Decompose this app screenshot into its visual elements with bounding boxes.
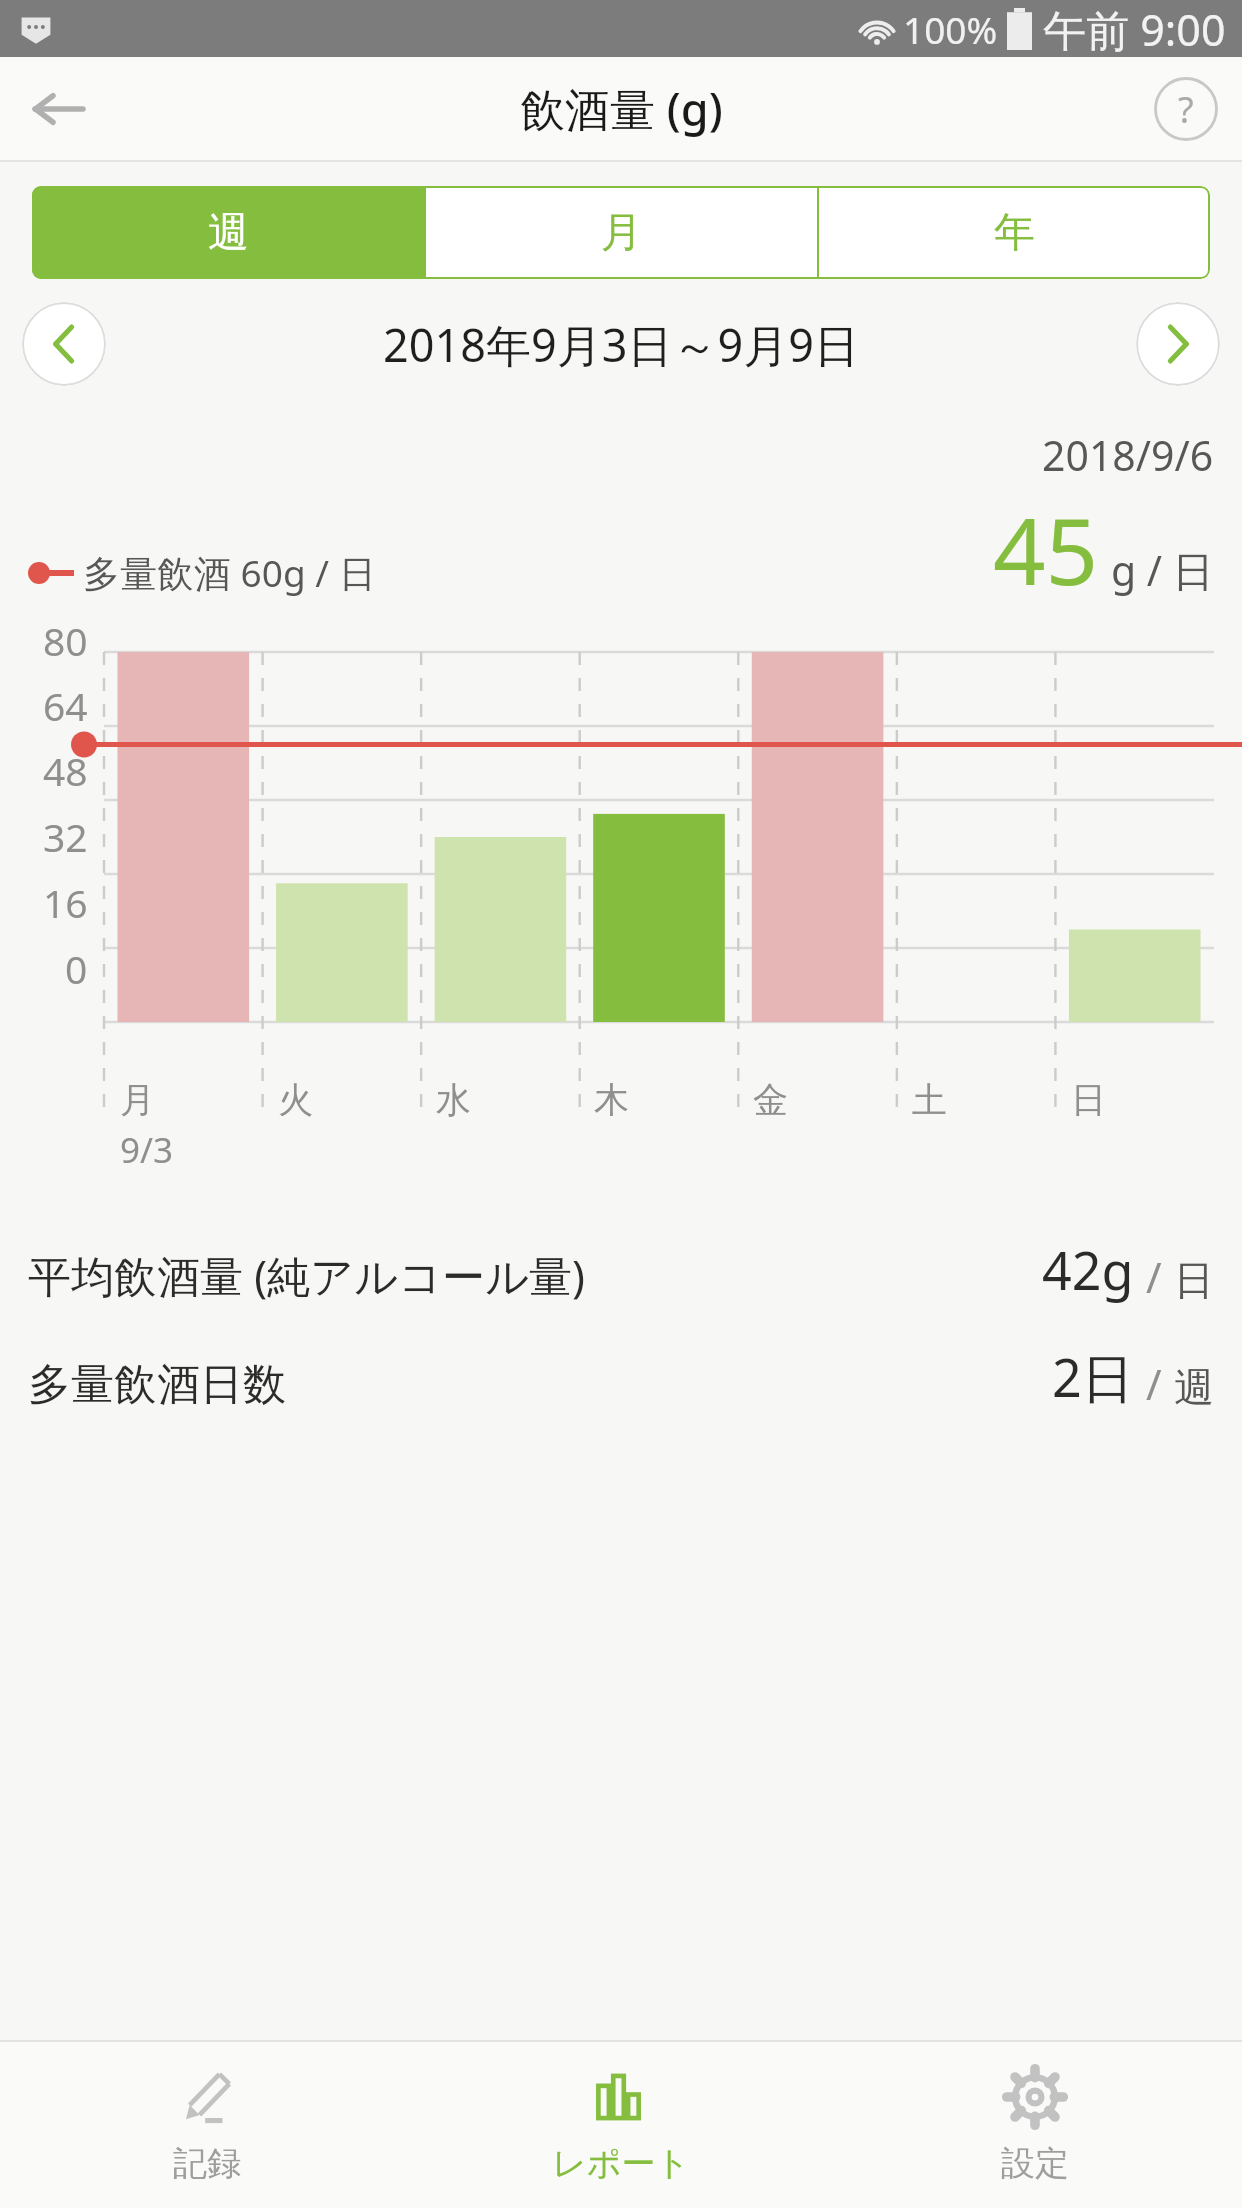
staticText: / (1146, 1355, 1162, 1412)
button[interactable]: 月 (426, 186, 817, 279)
staticText: 45 (993, 487, 1099, 612)
button[interactable]: Help (1154, 77, 1218, 141)
staticText: 土 (912, 1078, 947, 1122)
button[interactable]: 年 (819, 186, 1210, 279)
staticText: ? (1178, 85, 1194, 134)
staticText: 100% (903, 4, 998, 54)
staticText: 日 (1174, 1255, 1214, 1305)
staticText: g / 日 (1111, 542, 1214, 598)
staticText: 火 (278, 1078, 313, 1122)
staticText: / (1146, 1248, 1162, 1305)
staticText: 金 (753, 1078, 788, 1122)
staticText: 64 (43, 679, 88, 732)
staticText: 80 (43, 614, 88, 667)
staticText: 水 (436, 1078, 471, 1122)
staticText: 週 (1174, 1362, 1214, 1412)
button[interactable]: Next week (1136, 302, 1220, 386)
button[interactable]: Previous week (22, 302, 106, 386)
staticText: 多量飲酒日数 (28, 1358, 286, 1412)
staticText: 2日 (1052, 1341, 1134, 1412)
staticText: レポート (552, 2142, 691, 2185)
staticText: 月 (601, 207, 642, 259)
staticText: 9/3 (120, 1126, 174, 1174)
staticText: 平均飲酒量 (純アルコール量) (28, 1246, 586, 1305)
staticText: 年 (994, 207, 1035, 259)
staticText: 2018年9月3日～9月9日 (106, 314, 1136, 375)
staticText: 記録 (173, 2142, 241, 2185)
button[interactable]: 週 (32, 186, 424, 279)
staticText: 月 (120, 1078, 155, 1122)
staticText: 多量飲酒 60g / 日 (83, 547, 376, 598)
staticText: 木 (594, 1078, 629, 1122)
staticText: 16 (43, 876, 88, 929)
staticText: 飲酒量 (g) (520, 78, 723, 139)
button[interactable]: 記録 (0, 2042, 414, 2208)
staticText: 0 (65, 942, 88, 995)
staticText: 48 (43, 744, 88, 797)
staticText: 午前 9:00 (1043, 0, 1226, 57)
button[interactable]: Back (20, 71, 96, 147)
staticText: 日 (1071, 1078, 1106, 1122)
staticText: 設定 (1001, 2142, 1069, 2185)
staticText: 42g (1042, 1234, 1134, 1305)
staticText: 週 (208, 207, 249, 259)
button[interactable]: 設定 (828, 2042, 1242, 2208)
staticText: 2018/9/6 (1042, 427, 1214, 483)
staticText: 32 (43, 810, 88, 863)
button[interactable]: レポート (414, 2042, 828, 2208)
